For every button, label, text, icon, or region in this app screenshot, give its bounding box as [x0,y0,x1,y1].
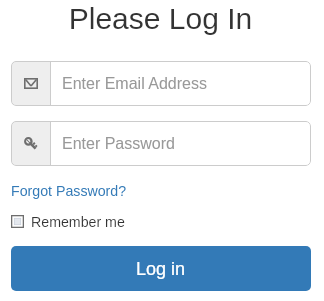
staticText: Log in [136,259,186,279]
button[interactable]: Email [11,61,311,106]
button[interactable]: Remember me checkbox [11,211,125,231]
staticText: Remember me [31,214,125,230]
other: Email [24,78,38,89]
staticText: Enter Email Address [62,75,207,93]
button[interactable]: Password [11,121,311,166]
staticText: Please Log In [0,2,321,36]
other: Remember me checkbox [11,215,24,228]
staticText: Forgot Password? [11,183,127,199]
other: Password [23,136,38,151]
button[interactable]: Log in [11,246,311,291]
staticText: Enter Password [62,135,175,153]
button[interactable]: Forgot Password? [11,183,127,199]
